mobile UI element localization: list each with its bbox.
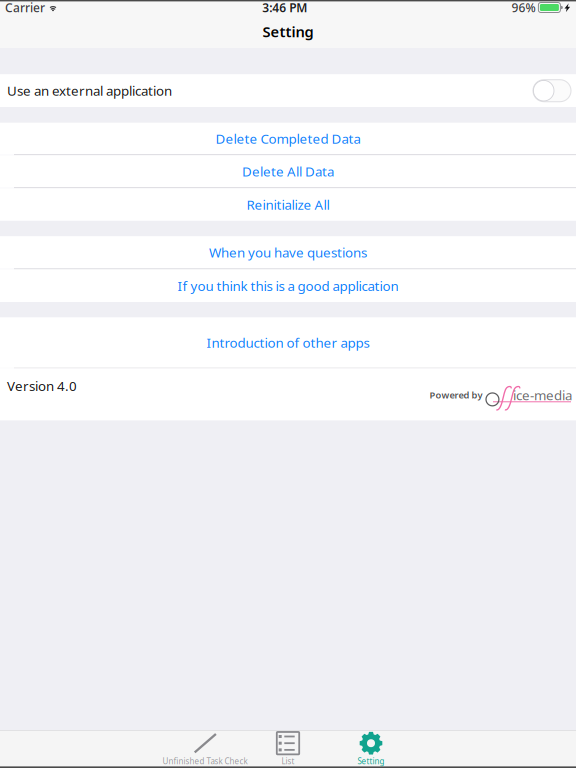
staticText: Unfinished Task Check bbox=[162, 756, 247, 766]
staticText: 3:46 PM bbox=[262, 0, 307, 15]
button[interactable]: If you think this is a good application bbox=[0, 269, 576, 302]
button[interactable]: Use an external application bbox=[0, 74, 576, 107]
staticText: Setting bbox=[262, 22, 313, 41]
staticText: 96% bbox=[511, 0, 535, 15]
button[interactable]: Delete All Data bbox=[0, 155, 576, 187]
button[interactable]: Setting bbox=[329, 731, 412, 768]
staticText: Powered by bbox=[429, 389, 482, 401]
button[interactable]: Delete Completed Data bbox=[0, 123, 576, 154]
button[interactable]: Introduction of other apps bbox=[0, 317, 576, 368]
button[interactable]: List bbox=[246, 731, 329, 768]
button[interactable]: When you have questions bbox=[0, 236, 576, 269]
button[interactable]: Reinitialize All bbox=[0, 188, 576, 221]
staticText: Introduction of other apps bbox=[206, 334, 369, 351]
staticText: Delete All Data bbox=[242, 162, 334, 180]
staticText: Carrier bbox=[5, 0, 45, 15]
staticText: Reinitialize All bbox=[246, 196, 329, 213]
staticText: ice-media bbox=[513, 386, 572, 404]
staticText: Delete Completed Data bbox=[215, 130, 360, 147]
staticText: Version 4.0 bbox=[7, 377, 77, 395]
staticText: Setting bbox=[357, 756, 384, 766]
staticText: List bbox=[281, 756, 294, 766]
staticText: When you have questions bbox=[209, 243, 367, 261]
staticText: If you think this is a good application bbox=[177, 277, 398, 295]
staticText: Use an external application bbox=[7, 82, 172, 99]
button[interactable]: Unfinished Task Check bbox=[163, 731, 246, 768]
